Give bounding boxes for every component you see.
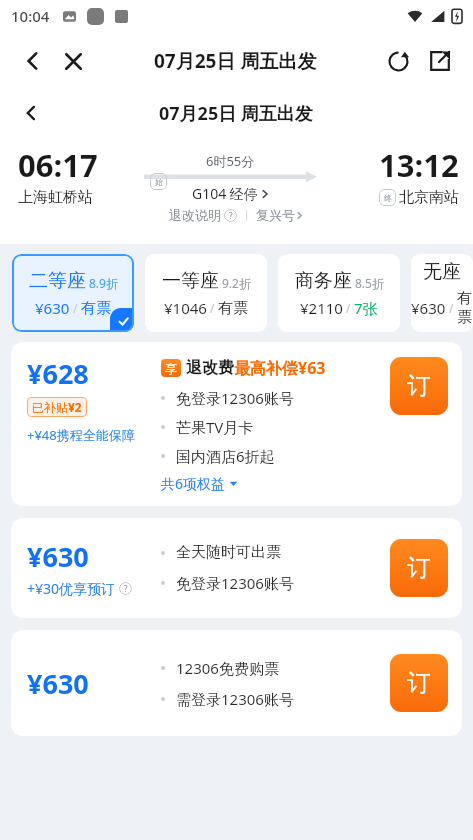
staticText: 一等座 — [162, 269, 219, 293]
staticText: / — [449, 300, 454, 316]
staticText: 有票 — [218, 299, 248, 318]
staticText: +¥48携程全能保障 — [27, 426, 135, 444]
button[interactable]: Close — [54, 42, 92, 80]
staticText: 07月25日 周五出发 — [159, 101, 313, 126]
button[interactable]: Refresh — [379, 42, 417, 80]
staticText: +¥30优享预订 — [27, 579, 116, 598]
staticText: ¥630 — [35, 298, 70, 318]
button[interactable]: 二等座 — [12, 254, 134, 332]
staticText: ¥630 — [27, 538, 89, 575]
staticText: 有票 — [457, 289, 473, 326]
staticText: 免登录12306账号 — [176, 388, 294, 408]
staticText: 10:04 — [11, 6, 50, 26]
staticText: / — [73, 300, 78, 316]
staticText: 始 — [155, 177, 163, 187]
button[interactable]: G104 经停 — [192, 184, 270, 203]
staticText: ¥630 — [411, 298, 446, 318]
staticText: 订 — [407, 371, 431, 401]
button[interactable]: ¥630 — [11, 630, 462, 736]
button[interactable]: ¥630 — [11, 518, 462, 618]
staticText: 最高补偿¥63 — [234, 357, 326, 379]
button[interactable]: 一等座 — [145, 254, 267, 332]
staticText: 终 — [384, 193, 392, 203]
button[interactable]: 订 — [390, 654, 448, 712]
button[interactable]: 订 — [390, 357, 448, 415]
staticText: 6时55分 — [206, 152, 255, 170]
button[interactable]: 退改说明 — [169, 207, 237, 223]
button[interactable]: Back — [14, 42, 52, 80]
staticText: 有票 — [81, 299, 111, 318]
staticText: 12306免费购票 — [176, 658, 279, 678]
staticText: 8.5折 — [355, 275, 384, 291]
staticText: G104 经停 — [192, 184, 258, 203]
staticText: 需登录12306账号 — [176, 689, 294, 709]
button[interactable]: Back — [16, 98, 46, 128]
staticText: 订 — [407, 668, 431, 698]
button[interactable]: 复兴号 — [256, 207, 304, 223]
staticText: 13:12 — [379, 144, 459, 186]
staticText: 订 — [407, 553, 431, 583]
staticText: 复兴号 — [256, 207, 295, 223]
staticText: ? — [124, 583, 128, 594]
staticText: 享 — [165, 361, 177, 376]
staticText: 9.2折 — [222, 275, 251, 291]
staticText: 国内酒店6折起 — [176, 446, 275, 466]
staticText: 无座 — [423, 260, 461, 284]
button[interactable]: ¥628 — [11, 342, 462, 506]
staticText: 共6项权益 — [161, 474, 226, 493]
staticText: 06:17 — [18, 144, 98, 186]
button[interactable]: Share — [421, 42, 459, 80]
staticText: ¥2110 — [300, 298, 343, 318]
staticText: 07月25日 周五出发 — [154, 48, 317, 74]
staticText: / — [210, 300, 215, 316]
staticText: 上海虹桥站 — [18, 188, 93, 207]
staticText: ¥2 — [68, 399, 82, 415]
staticText: ¥630 — [27, 665, 89, 702]
staticText: 免登录12306账号 — [176, 573, 294, 593]
staticText: 已补贴 — [32, 400, 68, 415]
staticText: ¥628 — [27, 355, 89, 392]
staticText: 全天随时可出票 — [176, 543, 281, 562]
staticText: 商务座 — [295, 269, 352, 293]
staticText: ¥1046 — [164, 298, 207, 318]
staticText: 二等座 — [29, 269, 86, 293]
staticText: 芒果TV月卡 — [176, 417, 254, 437]
button[interactable]: 无座 — [411, 254, 473, 332]
staticText: 8.9折 — [89, 275, 118, 291]
staticText: ? — [229, 210, 233, 221]
button[interactable]: 商务座 — [278, 254, 400, 332]
staticText: 退改说明 — [169, 207, 221, 223]
button[interactable]: 订 — [390, 539, 448, 597]
staticText: / — [346, 300, 351, 316]
staticText: 7张 — [354, 298, 378, 318]
staticText: 退改费 — [186, 358, 234, 378]
staticText: 北京南站 — [399, 188, 459, 207]
